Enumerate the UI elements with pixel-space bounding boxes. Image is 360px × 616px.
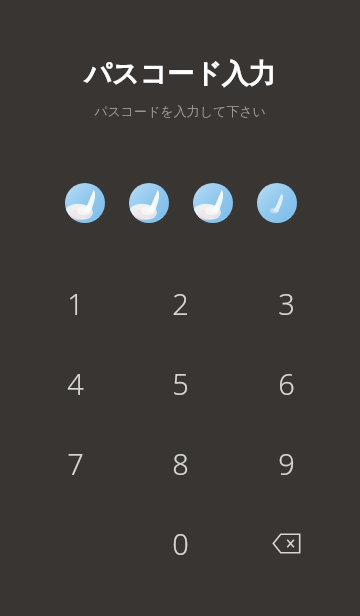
button[interactable]: 5 <box>132 344 228 422</box>
button[interactable]: 4 <box>27 344 123 422</box>
button[interactable]: 7 <box>27 424 123 502</box>
button[interactable]: 8 <box>132 424 228 502</box>
staticText: 5 <box>172 364 189 403</box>
staticText: 8 <box>172 444 189 483</box>
button[interactable]: 0 <box>132 504 228 582</box>
button[interactable]: 6 <box>238 344 334 422</box>
button[interactable]: 2 <box>132 264 228 342</box>
button[interactable]: 3 <box>238 264 334 342</box>
staticText: 7 <box>67 444 84 483</box>
button[interactable]: 9 <box>238 424 334 502</box>
staticText: パスコードを入力して下さい <box>94 103 266 119</box>
staticText: 0 <box>172 524 189 563</box>
staticText: 9 <box>278 444 295 483</box>
button[interactable]: 1 <box>27 264 123 342</box>
staticText: 1 <box>67 284 84 323</box>
staticText: 3 <box>278 284 295 323</box>
staticText: パスコード入力 <box>84 57 276 91</box>
button[interactable]: Delete <box>238 504 334 582</box>
staticText: 6 <box>278 364 295 403</box>
staticText: 2 <box>172 284 189 323</box>
staticText: 4 <box>67 364 84 403</box>
